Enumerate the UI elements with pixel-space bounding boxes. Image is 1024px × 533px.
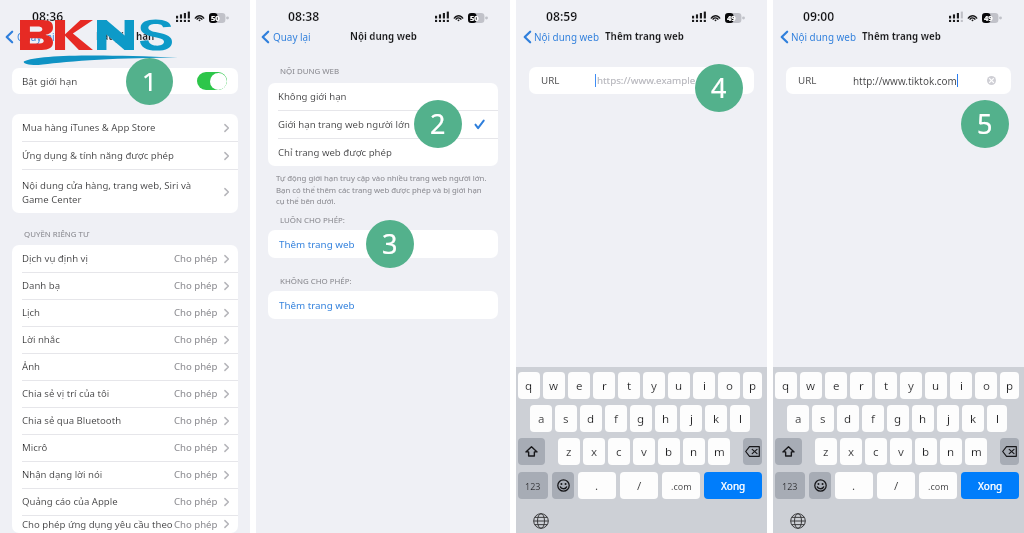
button[interactable]: y [643, 372, 665, 399]
button[interactable]: y [900, 372, 922, 399]
button[interactable]: z [815, 438, 837, 465]
button[interactable]: m [708, 438, 730, 465]
staticText: g [637, 411, 645, 427]
button[interactable]: s [812, 405, 834, 432]
button[interactable]: / [877, 472, 915, 499]
button[interactable]: r [593, 372, 615, 399]
button[interactable]: u [925, 372, 947, 399]
button[interactable]: / [620, 472, 658, 499]
button[interactable]: Backspace [743, 438, 762, 465]
button[interactable]: v [890, 438, 912, 465]
button[interactable]: o [718, 372, 740, 399]
button[interactable]: d [580, 405, 602, 432]
button[interactable]: d [837, 405, 859, 432]
button[interactable]: x [583, 438, 605, 465]
button[interactable]: Giới hạn trang web người lớn [268, 111, 498, 138]
button[interactable]: c [608, 438, 630, 465]
button[interactable]: f [605, 405, 627, 432]
staticText: Dịch vụ định vị [22, 252, 174, 265]
button[interactable]: Xong [961, 472, 1019, 499]
button[interactable]: Quay lại [262, 30, 311, 43]
button[interactable]: i [950, 372, 972, 399]
button[interactable]: e [568, 372, 590, 399]
button[interactable]: i [693, 372, 715, 399]
button[interactable]: x [840, 438, 862, 465]
button[interactable]: Dịch vụ định vị [12, 245, 238, 272]
button[interactable]: j [937, 405, 959, 432]
button[interactable]: k [962, 405, 984, 432]
button[interactable]: p [1000, 372, 1019, 399]
button[interactable]: Shift [518, 438, 545, 465]
button[interactable]: Nội dung web [781, 30, 857, 43]
button[interactable]: t [875, 372, 897, 399]
button[interactable]: k [705, 405, 727, 432]
button[interactable]: q [518, 372, 540, 399]
button[interactable]: .com [919, 472, 957, 499]
button[interactable]: Shift [775, 438, 802, 465]
button[interactable]: Nội dung cửa hàng, trang web, Siri và Ga… [12, 170, 238, 213]
button[interactable]: a [530, 405, 552, 432]
button[interactable]: n [683, 438, 705, 465]
button[interactable]: n [940, 438, 962, 465]
button[interactable]: a [787, 405, 809, 432]
button[interactable]: Emoji keyboard [809, 472, 831, 499]
button[interactable]: s [555, 405, 577, 432]
button[interactable]: Clear text [987, 76, 996, 85]
button[interactable]: Xong [704, 472, 762, 499]
button[interactable]: Ảnh [12, 353, 238, 380]
button[interactable]: Micrô [12, 434, 238, 461]
button[interactable]: Quay lại [6, 30, 55, 43]
button[interactable]: Backspace [1000, 438, 1019, 465]
button[interactable]: r [850, 372, 872, 399]
button[interactable]: w [543, 372, 565, 399]
button[interactable]: g [630, 405, 652, 432]
button[interactable]: h [912, 405, 934, 432]
button[interactable]: . [835, 472, 873, 499]
button[interactable]: Thêm trang web [268, 230, 498, 258]
button[interactable]: Không giới hạn [268, 83, 498, 110]
button[interactable]: Lời nhắc [12, 326, 238, 353]
button[interactable]: Quảng cáo của Apple [12, 488, 238, 515]
button[interactable]: e [825, 372, 847, 399]
button[interactable]: z [558, 438, 580, 465]
button[interactable]: . [578, 472, 616, 499]
button[interactable]: Bật giới hạn [12, 68, 238, 94]
button[interactable]: g [887, 405, 909, 432]
button[interactable]: w [800, 372, 822, 399]
button[interactable]: h [655, 405, 677, 432]
button[interactable]: l [987, 405, 1007, 432]
button[interactable]: 123 [518, 472, 548, 499]
button[interactable]: f [862, 405, 884, 432]
button[interactable]: t [618, 372, 640, 399]
button[interactable]: q [775, 372, 797, 399]
button[interactable]: o [975, 372, 997, 399]
button[interactable]: u [668, 372, 690, 399]
button[interactable]: Nhận dạng lời nói [12, 461, 238, 488]
button[interactable]: v [633, 438, 655, 465]
button[interactable]: Cho phép ứng dụng yêu cầu theo dõi [12, 515, 238, 533]
button[interactable]: 123 [775, 472, 805, 499]
button[interactable]: m [965, 438, 987, 465]
button[interactable]: Emoji keyboard [552, 472, 574, 499]
button[interactable]: Danh bạ [12, 272, 238, 299]
button[interactable]: .com [662, 472, 700, 499]
button[interactable]: j [680, 405, 702, 432]
staticText: 50 [470, 13, 479, 23]
button[interactable]: Chia sẻ qua Bluetooth [12, 407, 238, 434]
button[interactable]: b [915, 438, 937, 465]
button[interactable]: c [865, 438, 887, 465]
button[interactable]: Lịch [12, 299, 238, 326]
button[interactable]: Thêm trang web [268, 291, 498, 319]
button[interactable]: URL [529, 67, 754, 94]
button[interactable]: Mua hàng iTunes & App Store [12, 114, 238, 141]
button[interactable]: p [743, 372, 762, 399]
button[interactable]: l [730, 405, 750, 432]
button[interactable]: Change keyboard language [790, 513, 806, 529]
button[interactable]: Chia sẻ vị trí của tôi [12, 380, 238, 407]
button[interactable]: Chỉ trang web được phép [268, 139, 498, 166]
button[interactable]: Change keyboard language [533, 513, 549, 529]
button[interactable]: Ứng dụng & tính năng được phép [12, 142, 238, 169]
button[interactable]: URL [786, 67, 1011, 94]
button[interactable]: b [658, 438, 680, 465]
button[interactable]: Nội dung web [524, 30, 600, 43]
